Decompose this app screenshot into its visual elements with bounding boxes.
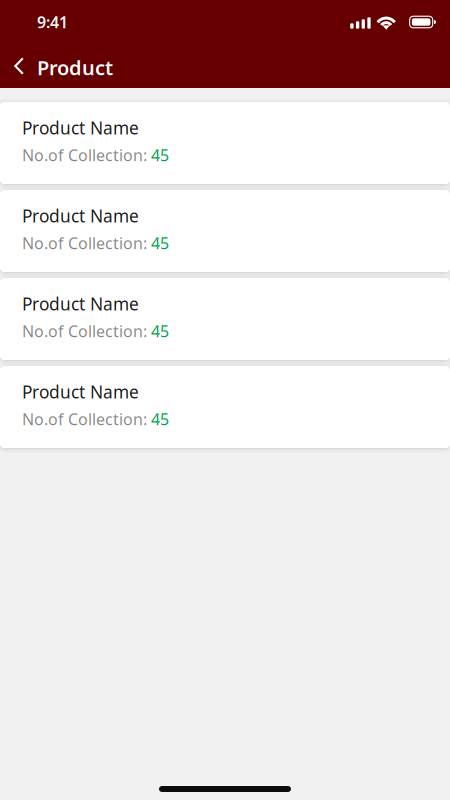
staticText: No.of Collection: <box>22 232 151 254</box>
staticText: Product Name <box>22 204 139 227</box>
staticText: 45 <box>151 144 169 166</box>
button[interactable]: Product Name <box>0 190 450 272</box>
staticText: No.of Collection: <box>22 408 151 430</box>
staticText: Product Name <box>22 380 139 403</box>
staticText: 45 <box>151 320 169 342</box>
button[interactable]: Back <box>0 44 125 88</box>
staticText: 45 <box>151 232 169 254</box>
button[interactable]: Product Name <box>0 278 450 360</box>
navigationBar: Product <box>0 44 450 88</box>
staticText: Product <box>37 54 113 81</box>
staticText: 45 <box>151 408 169 430</box>
staticText: Product Name <box>22 292 139 315</box>
button[interactable]: Product Name <box>0 102 450 184</box>
staticText: No.of Collection: <box>22 320 151 342</box>
staticText: 9:41 <box>37 11 68 33</box>
staticText: No.of Collection: <box>22 144 151 166</box>
button[interactable]: Product Name <box>0 366 450 448</box>
staticText: Product Name <box>22 116 139 139</box>
